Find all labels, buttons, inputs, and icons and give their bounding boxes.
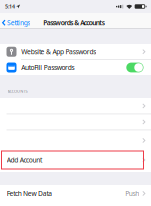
staticText: Add Account — [7, 156, 42, 164]
button[interactable]: Account — [0, 114, 151, 130]
staticText: Passwords & Accounts — [43, 18, 105, 27]
staticText: AutoFill Passwords — [21, 63, 74, 72]
staticText: ACCOUNTS — [7, 88, 28, 94]
button[interactable]: Fetch New Data — [0, 185, 151, 202]
button[interactable]: AutoFill Passwords — [126, 63, 143, 72]
button[interactable]: Add Account — [0, 151, 151, 169]
staticText: Website & App Passwords — [21, 47, 96, 56]
button[interactable]: Website & App Passwords — [0, 44, 151, 59]
button[interactable]: Account — [0, 98, 151, 114]
button[interactable]: Settings — [0, 14, 30, 27]
staticText: Settings — [7, 18, 30, 27]
staticText: 5:14 — [5, 3, 15, 10]
button[interactable]: Account — [0, 130, 151, 151]
staticText: Fetch New Data — [7, 189, 52, 198]
staticText: Push — [125, 189, 139, 198]
